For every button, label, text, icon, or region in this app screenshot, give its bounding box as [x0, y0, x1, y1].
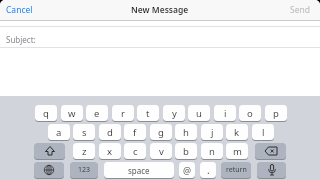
button[interactable]: f	[124, 124, 146, 141]
button[interactable]: u	[188, 105, 210, 122]
button[interactable]: l	[252, 124, 274, 141]
staticText: g	[158, 126, 164, 139]
button[interactable]: o	[239, 105, 261, 122]
button[interactable]: k	[226, 124, 248, 141]
button[interactable]: p	[265, 105, 287, 122]
button[interactable]: e	[86, 105, 108, 122]
staticText: r	[121, 107, 125, 120]
button[interactable]: 123	[70, 162, 98, 179]
staticText: v	[159, 145, 164, 158]
button[interactable]	[255, 143, 286, 160]
staticText: u	[196, 107, 202, 120]
staticText: q	[43, 107, 49, 120]
button[interactable]: return	[221, 162, 251, 179]
button[interactable]: @	[179, 162, 195, 179]
button[interactable]: space	[104, 162, 174, 179]
button[interactable]: Cancel	[4, 2, 44, 17]
button[interactable]: Send	[278, 2, 310, 17]
staticText: c	[133, 145, 138, 158]
button[interactable]: x	[99, 143, 121, 160]
staticText: d	[107, 126, 113, 139]
staticText: x	[107, 145, 113, 158]
button[interactable]: r	[112, 105, 134, 122]
button[interactable]: .	[200, 162, 216, 179]
button[interactable]: b	[175, 143, 197, 160]
button[interactable]: y	[163, 105, 185, 122]
button[interactable]: s	[73, 124, 95, 141]
button[interactable]: n	[201, 143, 223, 160]
staticText: New Message	[131, 4, 189, 16]
button[interactable]: q	[35, 105, 57, 122]
staticText: h	[183, 126, 189, 139]
staticText: i	[224, 107, 227, 120]
staticText: m	[233, 145, 242, 158]
staticText: w	[68, 107, 76, 120]
button[interactable]: h	[175, 124, 197, 141]
button[interactable]: Subject:	[0, 30, 320, 49]
staticText: 123	[78, 165, 91, 175]
staticText: j	[211, 126, 214, 139]
staticText: k	[234, 126, 240, 139]
staticText: b	[183, 145, 189, 158]
button[interactable]: j	[201, 124, 223, 141]
staticText: e	[94, 107, 100, 120]
staticText: Subject:	[6, 34, 36, 45]
button[interactable]	[34, 162, 64, 179]
staticText: t	[146, 107, 150, 120]
staticText: return	[226, 165, 247, 175]
staticText: l	[262, 126, 265, 139]
staticText: space	[128, 165, 150, 176]
staticText: y	[172, 107, 177, 120]
staticText: a	[56, 126, 62, 139]
button[interactable]: z	[73, 143, 95, 160]
button[interactable]: t	[137, 105, 159, 122]
staticText: z	[82, 145, 87, 158]
staticText: @	[183, 164, 192, 176]
staticText: f	[133, 126, 137, 139]
button[interactable]	[257, 162, 286, 179]
staticText: Send	[290, 4, 310, 16]
button[interactable]: m	[226, 143, 248, 160]
staticText: p	[273, 107, 279, 120]
button[interactable]	[34, 143, 65, 160]
staticText: .	[207, 163, 210, 177]
button[interactable]: c	[124, 143, 146, 160]
button[interactable]: i	[214, 105, 236, 122]
button[interactable]: v	[150, 143, 172, 160]
staticText: o	[247, 107, 253, 120]
button[interactable]: a	[48, 124, 70, 141]
button[interactable]: d	[99, 124, 121, 141]
staticText: Cancel	[6, 4, 33, 16]
staticText: n	[209, 145, 215, 158]
staticText: s	[82, 126, 87, 139]
button[interactable]: g	[150, 124, 172, 141]
button[interactable]: w	[61, 105, 83, 122]
